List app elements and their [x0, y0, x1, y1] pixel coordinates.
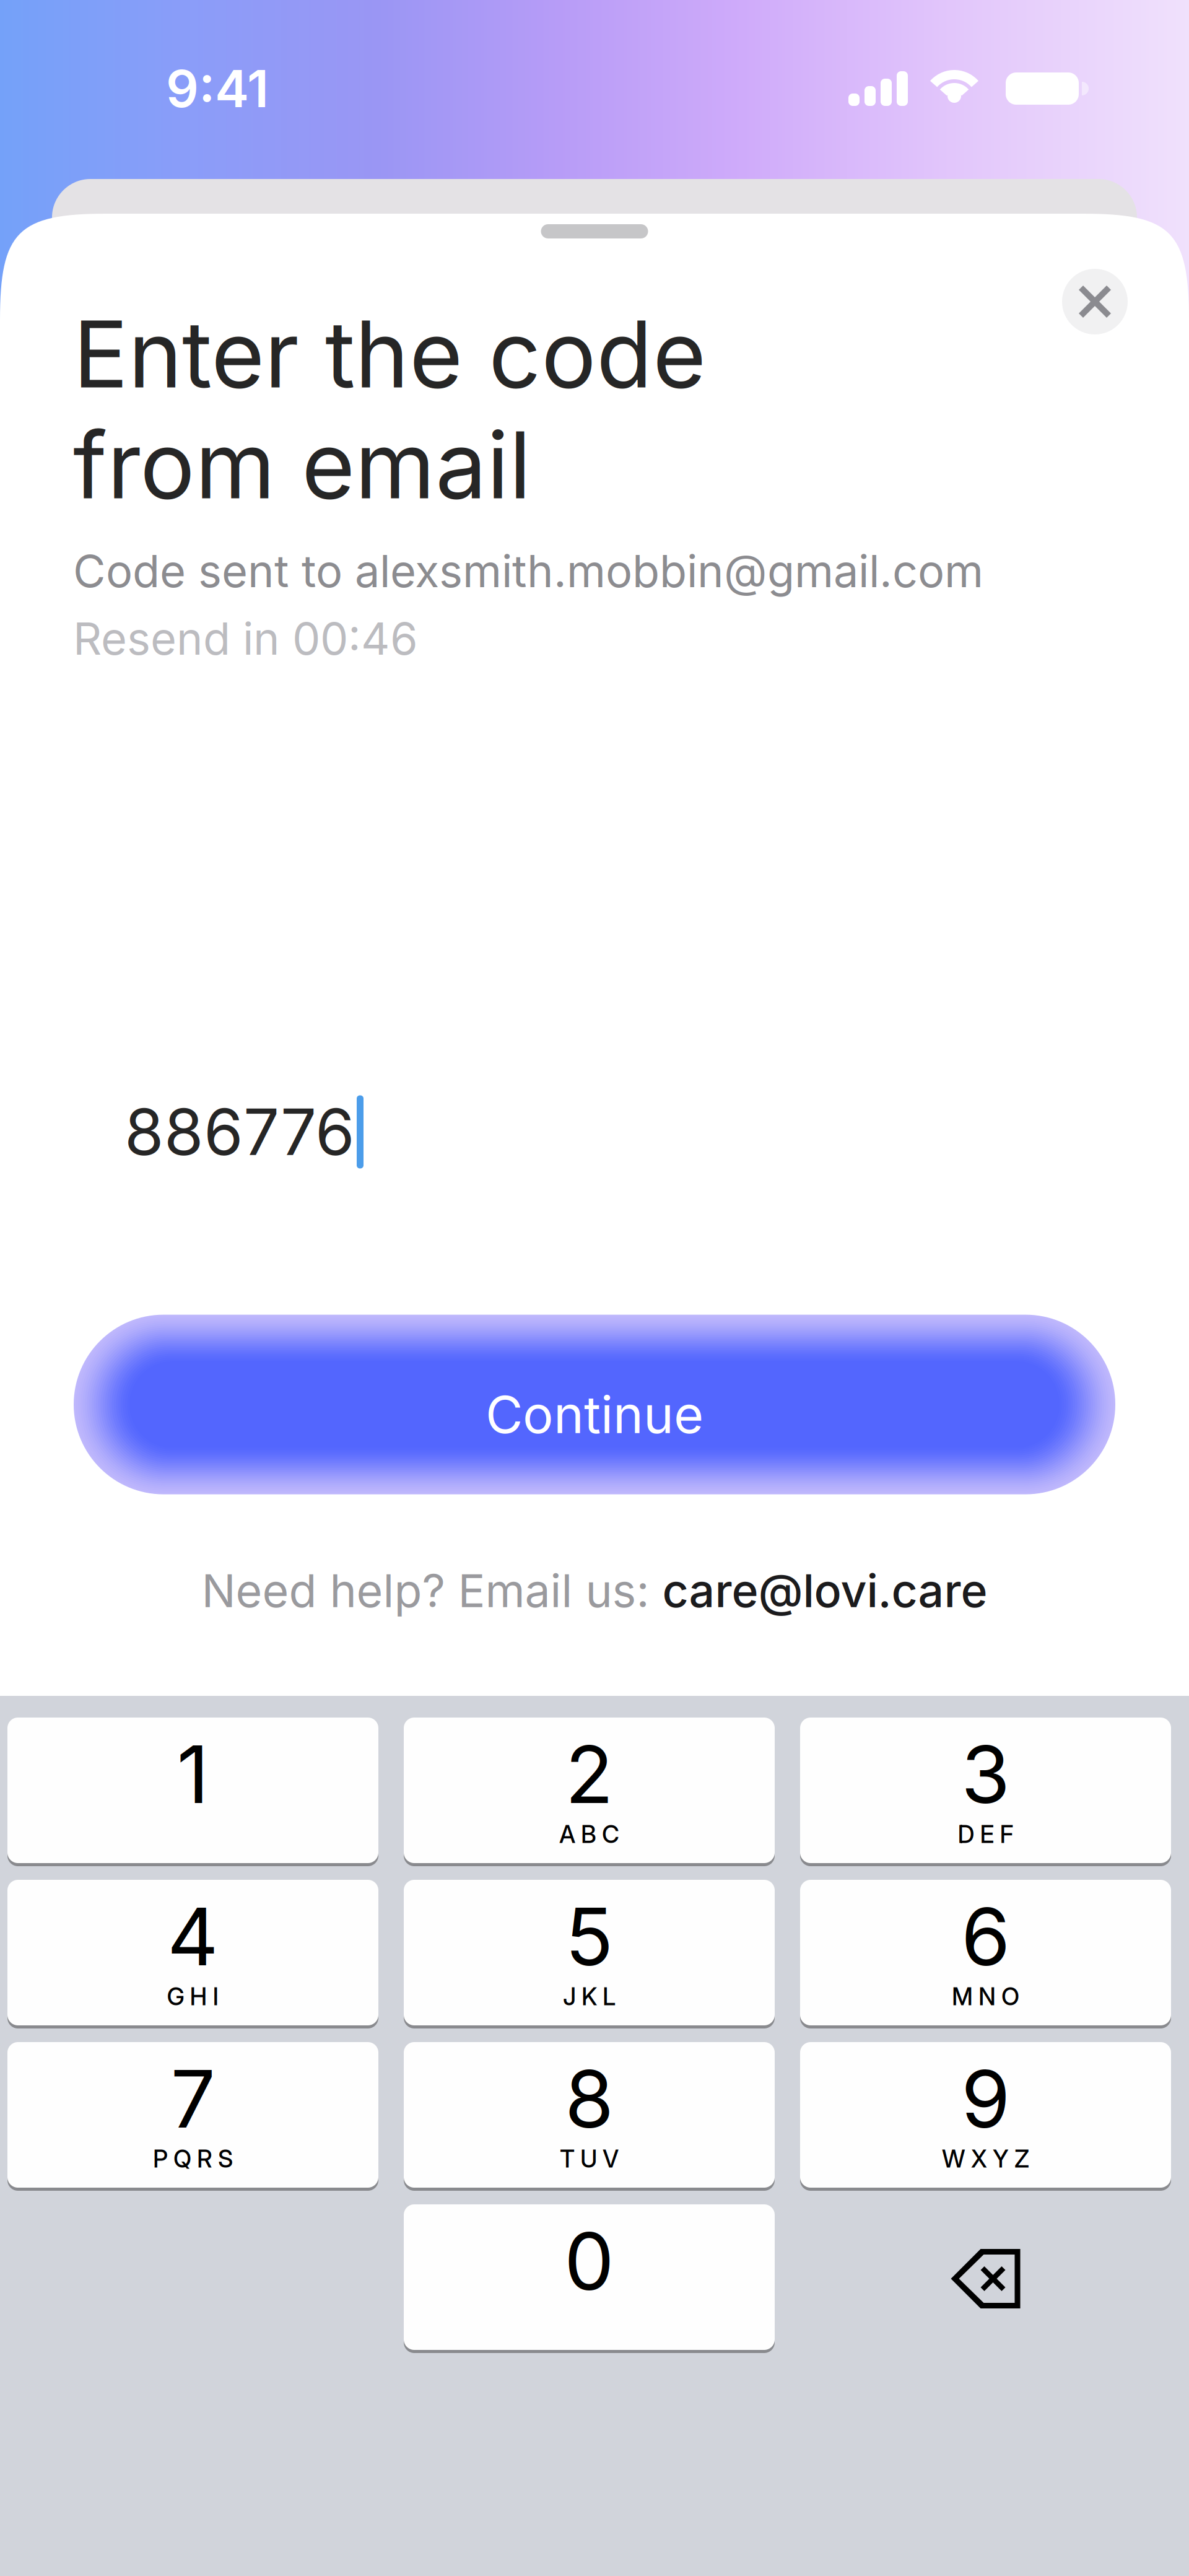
button[interactable]: 4	[7, 1880, 378, 2028]
staticText: 0	[564, 2213, 614, 2309]
staticText: 3	[961, 1726, 1010, 1822]
button[interactable]: Continue	[74, 1315, 1115, 1494]
staticText: 5	[565, 1888, 613, 1984]
button[interactable]: 7	[7, 2042, 378, 2191]
staticText: 2	[565, 1726, 613, 1822]
staticText: W X Y Z	[942, 2144, 1029, 2173]
staticText: 886776	[124, 1093, 355, 1170]
button[interactable]: 0	[404, 2204, 775, 2353]
button[interactable]: 1	[7, 1718, 378, 1866]
staticText: Continue	[486, 1383, 703, 1445]
staticText: Code sent to alexsmith.mobbin@gmail.com	[73, 544, 983, 598]
staticText: care@lovi.care	[662, 1563, 987, 1618]
staticText: M N O	[952, 1982, 1019, 2011]
button[interactable]: Need help? Email us:	[202, 1563, 987, 1618]
button[interactable]: 2	[404, 1718, 775, 1866]
staticText: 7	[171, 2051, 215, 2147]
button[interactable]: 9	[800, 2042, 1171, 2191]
button[interactable]: Delete	[800, 2206, 1171, 2351]
staticText: Enter the code from email	[73, 299, 706, 520]
button[interactable]: 8	[404, 2042, 775, 2191]
button[interactable]: Close	[1062, 269, 1128, 334]
staticText: 6	[961, 1888, 1010, 1984]
staticText: 8	[565, 2051, 614, 2147]
staticText: Need help? Email us:	[202, 1563, 662, 1618]
button[interactable]: 5	[404, 1880, 775, 2028]
staticText: A B C	[559, 1820, 619, 1849]
staticText: P Q R S	[153, 2144, 233, 2173]
staticText: 9:41	[166, 58, 269, 120]
staticText: 4	[167, 1888, 219, 1984]
staticText: D E F	[958, 1820, 1013, 1849]
staticText: T U V	[560, 2144, 619, 2173]
staticText: J K L	[563, 1982, 616, 2011]
button[interactable]: 6	[800, 1880, 1171, 2028]
staticText: Resend in 00:46	[73, 612, 418, 665]
staticText: 1	[177, 1726, 209, 1822]
staticText: 9	[961, 2051, 1010, 2147]
staticText: G H I	[167, 1982, 219, 2011]
button[interactable]: 3	[800, 1718, 1171, 1866]
